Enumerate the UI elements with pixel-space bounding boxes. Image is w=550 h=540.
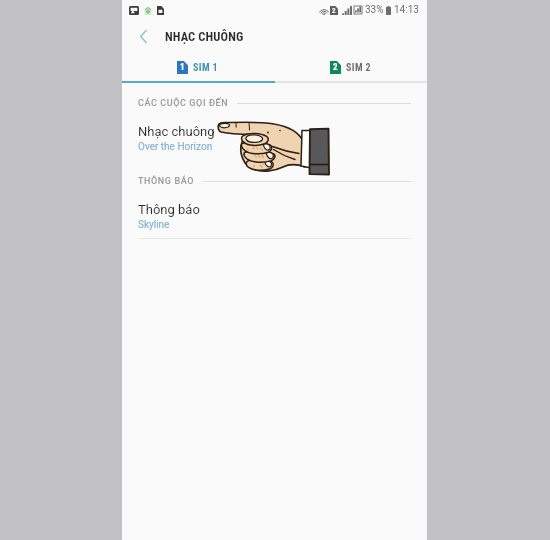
- button[interactable]: 2: [274, 53, 427, 81]
- staticText: SIM 1: [193, 62, 219, 74]
- staticText: NHẠC CHUÔNG: [165, 29, 244, 44]
- staticText: Skyline: [138, 219, 170, 231]
- button[interactable]: 1: [122, 53, 274, 81]
- staticText: 2: [333, 62, 338, 73]
- staticText: 1: [180, 62, 185, 73]
- button[interactable]: Back: [122, 20, 165, 53]
- staticText: THÔNG BÁO: [138, 176, 195, 187]
- button[interactable]: Thông báo: [122, 188, 427, 237]
- staticText: Thông báo: [138, 202, 200, 217]
- staticText: Nhạc chuông: [138, 124, 215, 139]
- staticText: 33%: [365, 4, 384, 16]
- staticText: CÁC CUỘC GỌI ĐẾN: [138, 98, 229, 109]
- staticText: 2: [332, 7, 336, 15]
- staticText: 14:13: [394, 4, 419, 16]
- staticText: Over the Horizon: [138, 141, 213, 153]
- button[interactable]: Nhạc chuông: [122, 110, 427, 159]
- staticText: SIM 2: [346, 62, 372, 74]
